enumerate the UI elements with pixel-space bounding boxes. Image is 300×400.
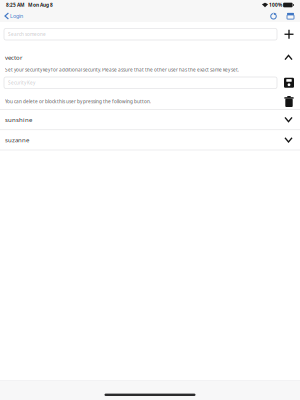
button[interactable]: Delete user	[281, 95, 297, 108]
staticText: suzanne	[5, 136, 29, 144]
staticText: Set your security key for additional sec…	[5, 67, 239, 73]
button[interactable]: Archive	[282, 10, 299, 22]
staticText: Security Key	[8, 80, 35, 86]
button[interactable]: Refresh	[265, 10, 282, 22]
button[interactable]: sunshine	[0, 110, 300, 129]
staticText: sunshine	[5, 115, 32, 124]
staticText: vector	[5, 53, 22, 62]
button[interactable]: Save	[281, 77, 297, 88]
staticText: Mon Aug 8	[25, 2, 53, 8]
button[interactable]: Login	[1, 10, 27, 22]
staticText: 100%	[268, 2, 283, 8]
staticText: Login	[10, 12, 23, 20]
button[interactable]: vector	[0, 46, 300, 62]
staticText: Search someone	[8, 31, 46, 37]
button[interactable]: suzanne	[0, 130, 300, 150]
button[interactable]: Add	[281, 26, 297, 42]
staticText: You can delete or block this user by pre…	[5, 98, 151, 105]
staticText: 8:25 AM	[6, 2, 25, 8]
